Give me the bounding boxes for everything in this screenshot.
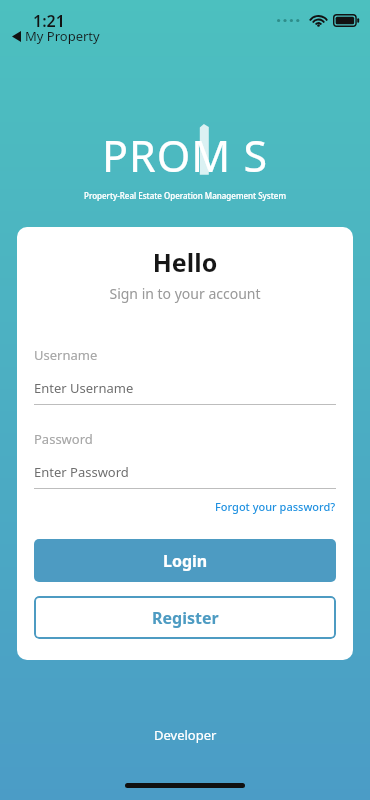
staticText: Property-Real Estate Operation Managemen… bbox=[84, 190, 286, 201]
staticText: Password bbox=[34, 430, 93, 448]
button[interactable]: Login bbox=[34, 539, 336, 582]
button[interactable]: Username bbox=[34, 346, 336, 405]
staticText: Hello bbox=[34, 245, 336, 279]
staticText: Username bbox=[34, 346, 98, 364]
staticText: PROM S bbox=[102, 126, 269, 185]
button[interactable]: Password bbox=[34, 430, 336, 489]
staticText: My Property bbox=[25, 27, 100, 45]
staticText: Login bbox=[163, 550, 208, 572]
staticText: Register bbox=[152, 607, 219, 629]
staticText: 1:21 bbox=[33, 10, 65, 32]
staticText: Enter Password bbox=[34, 463, 129, 481]
button[interactable]: Developer bbox=[154, 726, 217, 744]
button[interactable]: Forgot your password? bbox=[215, 499, 336, 514]
staticText: Sign in to your account bbox=[34, 284, 336, 303]
staticText: Enter Username bbox=[34, 379, 134, 397]
button[interactable]: Register bbox=[34, 596, 336, 639]
